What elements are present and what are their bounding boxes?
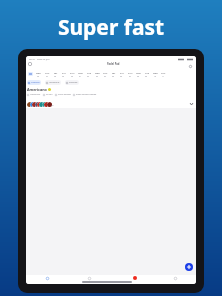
staticText: FRI — [54, 72, 58, 75]
staticText: SUN — [70, 72, 75, 75]
button[interactable]: Finished — [65, 80, 79, 85]
staticText: MON — [78, 72, 84, 75]
staticText: Court booked — [58, 93, 71, 96]
staticText: 05 — [112, 75, 115, 78]
staticText: 26 — [37, 75, 40, 78]
button[interactable]: WED — [94, 72, 101, 78]
staticText: SAT — [120, 72, 124, 75]
button[interactable]: Add — [185, 263, 193, 271]
staticText: 45 Min — [46, 93, 53, 96]
button[interactable]: Ongoing — [27, 80, 41, 85]
button[interactable]: WED — [152, 72, 159, 78]
staticText: SAT — [62, 72, 66, 75]
staticText: FRI — [112, 72, 116, 75]
button[interactable]: SAT — [118, 72, 125, 78]
staticText: 29 — [62, 75, 65, 78]
staticText: THU — [161, 72, 166, 75]
staticText: 08 — [137, 75, 140, 78]
staticText: 11 — [162, 75, 165, 78]
staticText: WED — [95, 72, 100, 75]
staticText: MON — [136, 72, 142, 75]
staticText: 09:41 Wed 26 Jun — [29, 57, 50, 60]
button[interactable]: SAT — [60, 72, 67, 78]
button[interactable]: All days — [28, 72, 33, 76]
button[interactable]: Home — [44, 275, 51, 282]
button[interactable]: THU — [160, 72, 167, 78]
button[interactable]: Upcoming — [45, 80, 61, 85]
staticText: Americano — [27, 87, 47, 92]
button[interactable]: Menu — [26, 60, 34, 68]
staticText: TUE — [145, 72, 149, 75]
button[interactable]: SUN — [69, 72, 76, 78]
staticText: Ongoing — [31, 81, 40, 84]
staticText: 06 — [120, 75, 123, 78]
staticText: 01 — [79, 75, 82, 78]
button[interactable]: MON — [135, 72, 142, 78]
staticText: Super fast — [0, 13, 222, 42]
staticText: 02 — [87, 75, 90, 78]
staticText: Padel Pad — [107, 62, 120, 66]
button[interactable]: Expand — [189, 101, 194, 106]
staticText: WED — [153, 72, 158, 75]
staticText: WED — [36, 72, 41, 75]
button[interactable]: THU — [44, 72, 51, 78]
staticText: Upcoming — [49, 81, 60, 84]
staticText: THU — [103, 72, 108, 75]
staticText: 30 — [71, 75, 74, 78]
staticText: TUE — [87, 72, 91, 75]
button[interactable]: SUN — [127, 72, 134, 78]
button[interactable]: THU — [102, 72, 109, 78]
button[interactable]: Search — [86, 275, 93, 282]
staticText: Padel Kortbyt Lidingö — [76, 93, 97, 96]
staticText: 09 — [145, 75, 148, 78]
button[interactable]: FRI — [52, 72, 59, 78]
button[interactable]: Profile — [186, 62, 194, 70]
button[interactable]: FRI — [110, 72, 117, 78]
button[interactable]: TUE — [143, 72, 150, 78]
button[interactable]: Profile — [172, 275, 179, 282]
button[interactable]: WED — [35, 72, 42, 78]
button[interactable]: Notifications — [131, 274, 138, 281]
staticText: 27 — [46, 75, 49, 78]
button[interactable]: TUE — [85, 72, 92, 78]
staticText: +8 — [51, 104, 54, 107]
staticText: THU — [45, 72, 50, 75]
staticText: 03 — [96, 75, 99, 78]
button[interactable]: MON — [77, 72, 84, 78]
staticText: Finished — [69, 81, 78, 84]
staticText: SUN — [128, 72, 133, 75]
staticText: 04 — [104, 75, 107, 78]
staticText: 28 — [54, 75, 57, 78]
staticText: 07 — [129, 75, 132, 78]
staticText: 10 — [154, 75, 157, 78]
staticText: Americano — [30, 93, 41, 96]
